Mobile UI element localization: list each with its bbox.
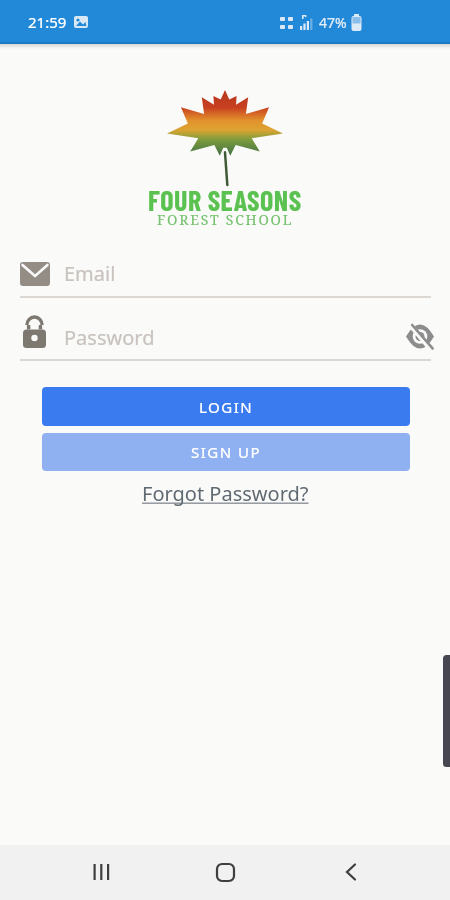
staticText: FOUR SEASONS (148, 183, 302, 217)
button[interactable]: Email (20, 255, 431, 297)
button[interactable] (201, 848, 249, 896)
staticText: Email (64, 260, 116, 287)
button[interactable]: Forgot Password? (142, 480, 309, 507)
staticText: SIGN UP (191, 442, 262, 462)
staticText: 47% (319, 13, 347, 32)
staticText: LOGIN (199, 397, 254, 417)
staticText: 21:59 (28, 12, 67, 32)
staticText: Forgot Password? (142, 480, 309, 507)
staticText: FOREST SCHOOL (157, 210, 294, 229)
staticText: Password (64, 324, 155, 351)
button[interactable] (77, 848, 125, 896)
button[interactable] (400, 318, 440, 354)
button[interactable] (327, 848, 375, 896)
button[interactable]: LOGIN (42, 387, 410, 426)
button[interactable]: SIGN UP (42, 433, 410, 471)
button[interactable]: Password (20, 317, 431, 359)
